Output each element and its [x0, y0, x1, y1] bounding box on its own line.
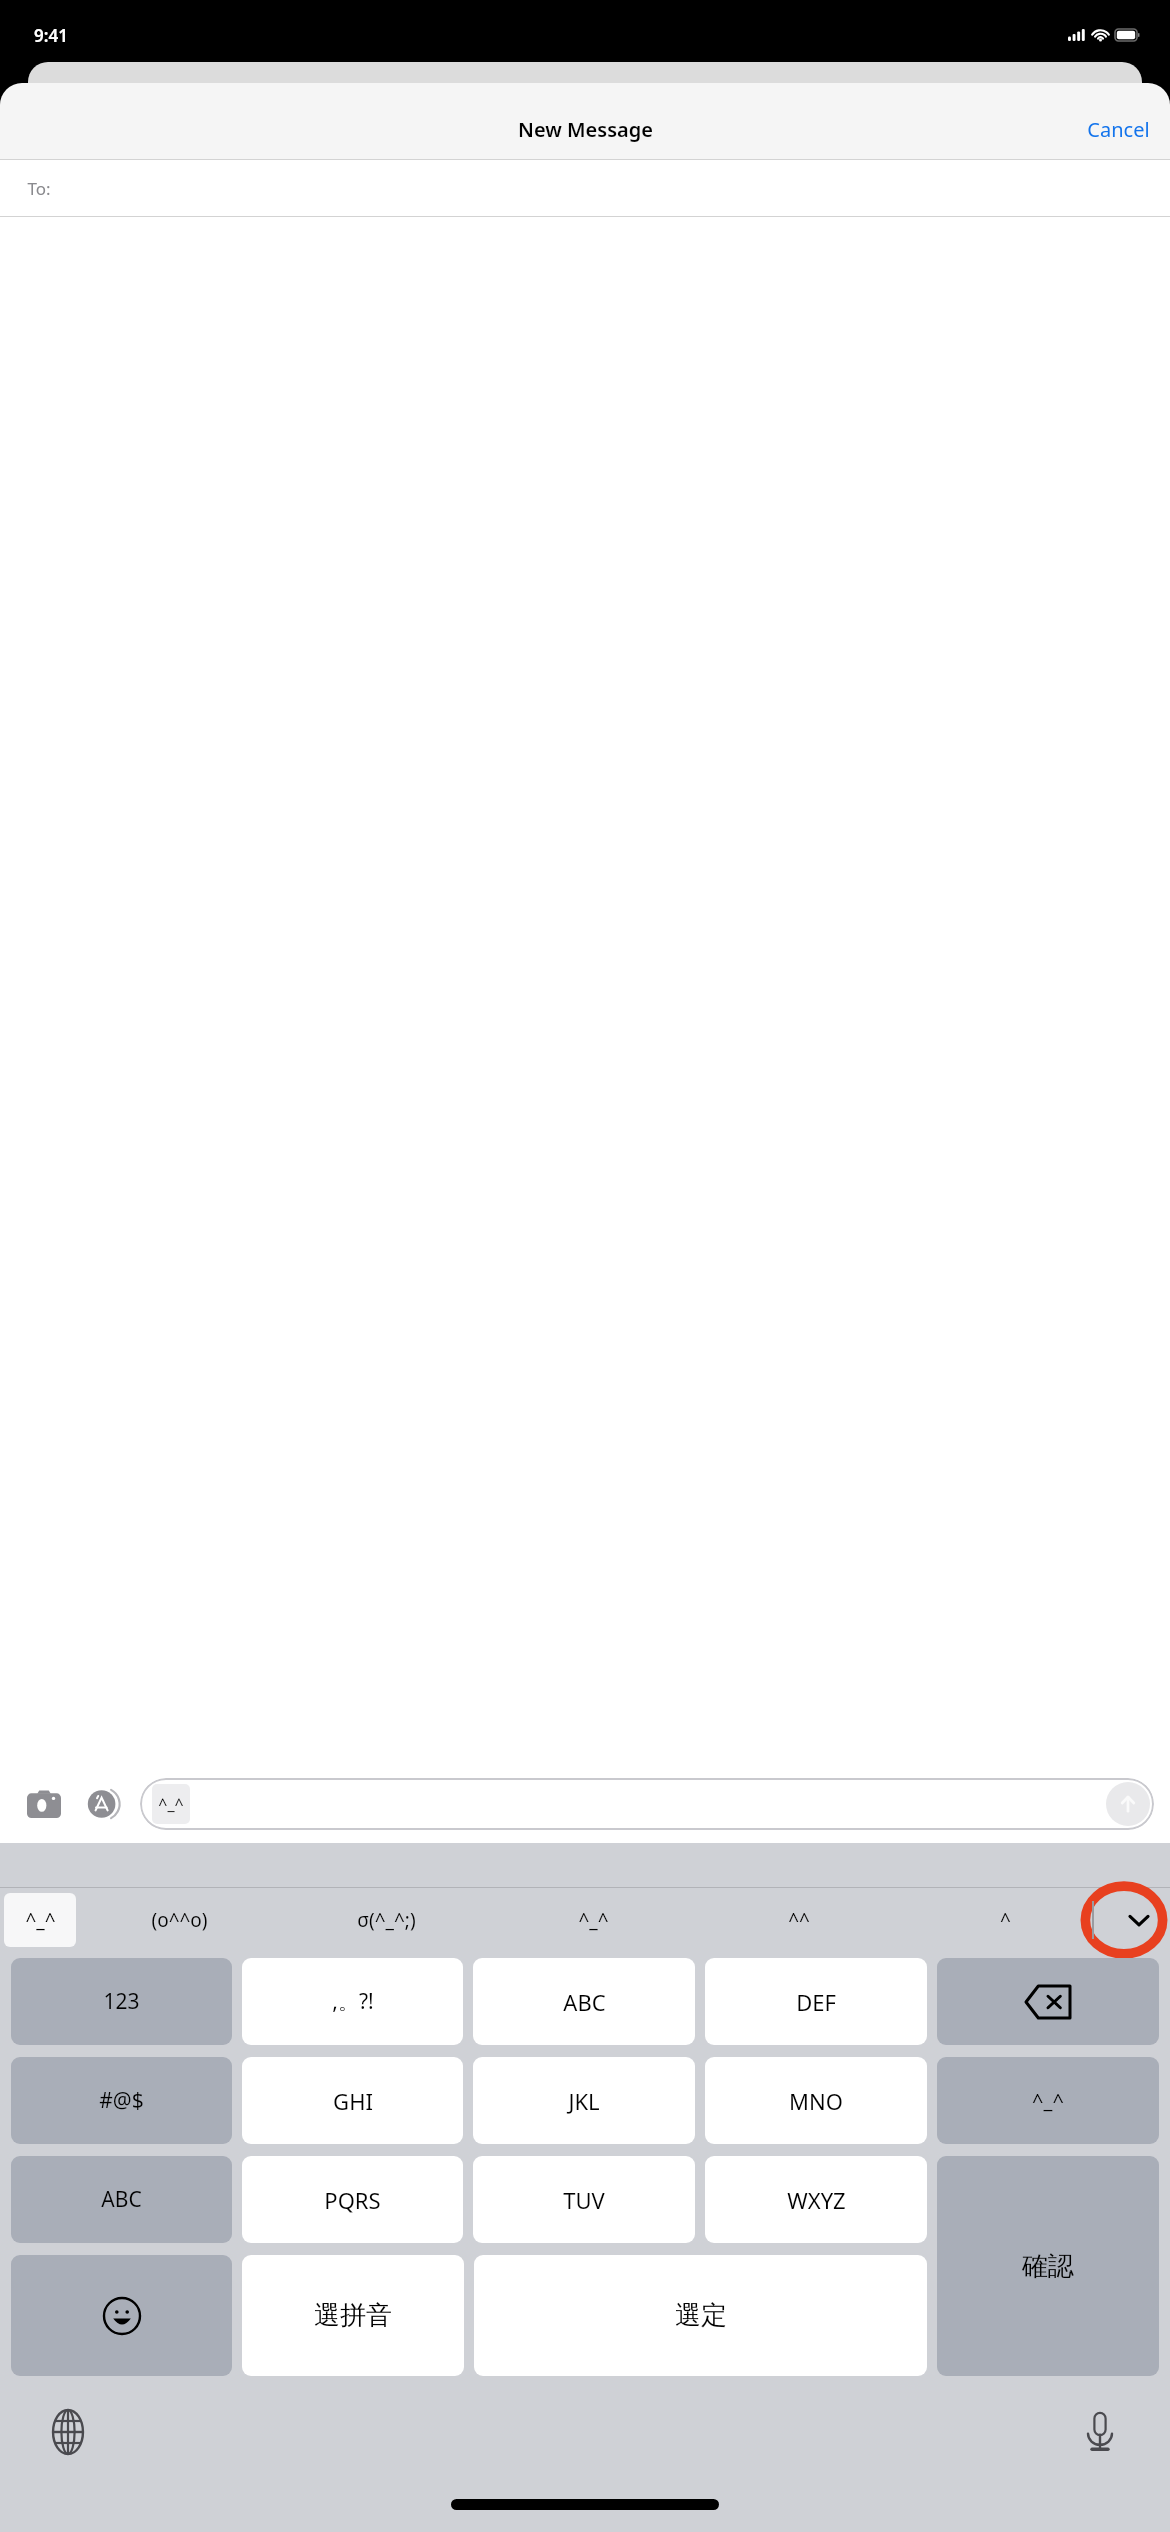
staticText: 選拼音 [314, 2299, 392, 2332]
staticText: ^^ [788, 1907, 810, 1933]
button[interactable]: ^_^ [140, 1778, 1154, 1830]
button[interactable]: ^_^ [490, 1888, 696, 1952]
button[interactable]: JKL [473, 2057, 695, 2144]
staticText: 確認 [1022, 2250, 1074, 2283]
button[interactable]: MNO [705, 2057, 927, 2144]
button[interactable]: App Store [80, 1780, 128, 1828]
staticText: Cancel [1087, 116, 1150, 143]
staticText: JKL [568, 2086, 600, 2116]
staticText: PQRS [324, 2185, 381, 2215]
staticText: ^_^ [158, 1793, 184, 1815]
button[interactable]: ^ [902, 1888, 1108, 1952]
button[interactable]: Hide suggestions [1108, 1888, 1170, 1952]
button[interactable]: DEF [705, 1958, 927, 2045]
staticText: ^ [1000, 1907, 1011, 1933]
staticText: MNO [789, 2086, 843, 2116]
staticText: #@$ [99, 2086, 144, 2115]
button[interactable]: ABC [473, 1958, 695, 2045]
staticText: 選定 [675, 2299, 727, 2332]
staticText: ABC [563, 1987, 606, 2017]
staticText: σ(^_^;) [357, 1907, 416, 1933]
button[interactable]: TUV [473, 2156, 695, 2243]
button[interactable]: Emoji [11, 2255, 232, 2376]
button[interactable]: 選拼音 [242, 2255, 464, 2376]
button[interactable]: Delete [937, 1958, 1159, 2045]
button[interactable]: Camera [20, 1780, 68, 1828]
button[interactable]: 確認 [937, 2156, 1159, 2376]
staticText: ABC [101, 2185, 142, 2214]
button[interactable]: 123 [11, 1958, 232, 2045]
staticText: To: [27, 177, 51, 200]
button[interactable]: σ(^_^;) [283, 1888, 490, 1952]
staticText: ^_^ [578, 1907, 609, 1933]
staticText: 123 [103, 1987, 140, 2016]
button[interactable]: ^^ [696, 1888, 902, 1952]
staticText: WXYZ [787, 2185, 846, 2215]
button[interactable]: PQRS [242, 2156, 463, 2243]
button[interactable]: ABC [11, 2156, 232, 2243]
button[interactable]: Send [1106, 1782, 1150, 1826]
button[interactable]: ,。?! [242, 1958, 463, 2045]
staticText: TUV [563, 2185, 605, 2215]
staticText: ^_^ [25, 1907, 56, 1933]
staticText: GHI [333, 2086, 373, 2116]
button[interactable]: (o^^o) [76, 1888, 283, 1952]
button[interactable]: GHI [242, 2057, 463, 2144]
button[interactable]: ^_^ [937, 2057, 1159, 2144]
staticText: DEF [796, 1987, 836, 2017]
staticText: ^_^ [1032, 2087, 1064, 2114]
staticText: New Message [518, 116, 653, 143]
button[interactable]: To: [0, 160, 1170, 216]
button[interactable]: Cancel [1067, 108, 1170, 151]
staticText: ,。?! [332, 1987, 374, 2016]
button[interactable]: Dictation [1068, 2400, 1132, 2464]
staticText: 9:41 [34, 24, 68, 47]
button[interactable]: WXYZ [705, 2156, 927, 2243]
button[interactable]: 選定 [474, 2255, 927, 2376]
staticText: (o^^o) [151, 1907, 208, 1933]
button[interactable]: ^_^ [4, 1893, 76, 1947]
button[interactable]: #@$ [11, 2057, 232, 2144]
button[interactable]: Switch keyboard [36, 2400, 100, 2464]
